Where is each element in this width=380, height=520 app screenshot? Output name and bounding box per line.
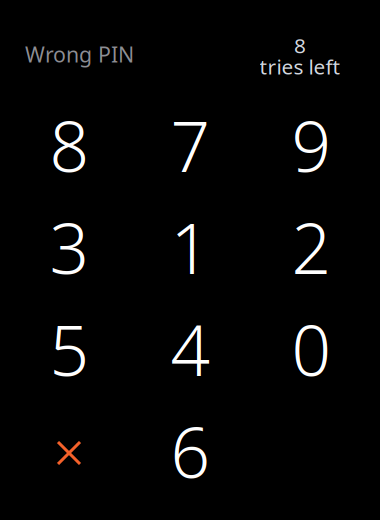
staticText: 5 [49, 303, 89, 395]
button[interactable]: 4 [130, 298, 251, 400]
button[interactable]: 1 [130, 196, 251, 298]
button[interactable]: 6 [130, 400, 251, 502]
button[interactable]: 2 [251, 196, 372, 298]
button[interactable]: Clear entry [9, 400, 130, 502]
staticText: 8 [294, 31, 306, 59]
staticText: tries left [259, 52, 340, 81]
staticText: 1 [170, 201, 210, 293]
button[interactable]: 7 [130, 94, 251, 196]
staticText: 4 [170, 303, 210, 395]
button[interactable]: 9 [251, 94, 372, 196]
button[interactable]: 3 [9, 196, 130, 298]
button[interactable]: 0 [251, 298, 372, 400]
staticText: 7 [170, 99, 210, 191]
staticText: 6 [170, 405, 210, 497]
staticText: 0 [291, 303, 331, 395]
staticText: 9 [291, 99, 331, 191]
staticText: Wrong PIN [25, 40, 134, 68]
staticText: 3 [49, 201, 89, 293]
staticText: 8 [49, 99, 89, 191]
staticText: 2 [291, 201, 331, 293]
button[interactable]: 8 [9, 94, 130, 196]
button[interactable]: 5 [9, 298, 130, 400]
